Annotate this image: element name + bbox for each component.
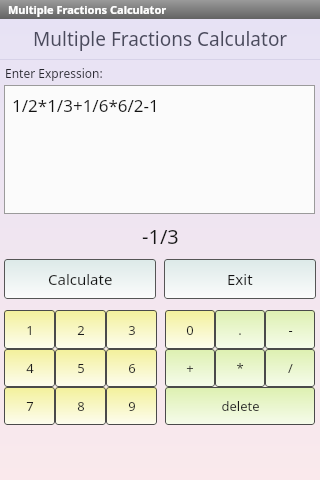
staticText: .: [238, 321, 242, 339]
staticText: *: [236, 359, 244, 377]
staticText: Enter Expression:: [5, 65, 103, 81]
staticText: 1: [26, 321, 34, 339]
button[interactable]: 1/2*1/3+1/6*6/2-1: [4, 85, 315, 214]
staticText: /: [288, 359, 293, 377]
staticText: 9: [128, 397, 136, 415]
button[interactable]: 7: [4, 387, 55, 425]
button[interactable]: 3: [106, 310, 157, 349]
button[interactable]: *: [215, 349, 265, 387]
button[interactable]: 4: [4, 349, 55, 387]
staticText: 2: [77, 321, 85, 339]
button[interactable]: 8: [55, 387, 106, 425]
staticText: delete: [221, 397, 260, 415]
staticText: Calculate: [48, 269, 113, 289]
staticText: 8: [77, 397, 85, 415]
button[interactable]: +: [165, 349, 215, 387]
button[interactable]: 6: [106, 349, 157, 387]
staticText: 1/2*1/3+1/6*6/2-1: [12, 94, 159, 117]
staticText: -: [288, 321, 293, 339]
button[interactable]: delete: [165, 387, 315, 425]
button[interactable]: 1: [4, 310, 55, 349]
button[interactable]: 5: [55, 349, 106, 387]
staticText: Exit: [227, 269, 253, 289]
button[interactable]: Calculate: [4, 259, 156, 299]
staticText: 0: [186, 321, 194, 339]
staticText: 4: [26, 359, 34, 377]
staticText: 7: [26, 397, 34, 415]
staticText: Multiple Fractions Calculator: [8, 2, 167, 17]
staticText: 6: [128, 359, 136, 377]
staticText: 5: [77, 359, 85, 377]
button[interactable]: Exit: [164, 259, 316, 299]
button[interactable]: -: [265, 310, 315, 349]
staticText: +: [186, 359, 194, 377]
button[interactable]: .: [215, 310, 265, 349]
button[interactable]: 9: [106, 387, 157, 425]
button[interactable]: 0: [165, 310, 215, 349]
button[interactable]: /: [265, 349, 315, 387]
staticText: Multiple Fractions Calculator: [33, 26, 288, 52]
button[interactable]: 2: [55, 310, 106, 349]
staticText: 3: [128, 321, 136, 339]
staticText: -1/3: [142, 223, 179, 250]
